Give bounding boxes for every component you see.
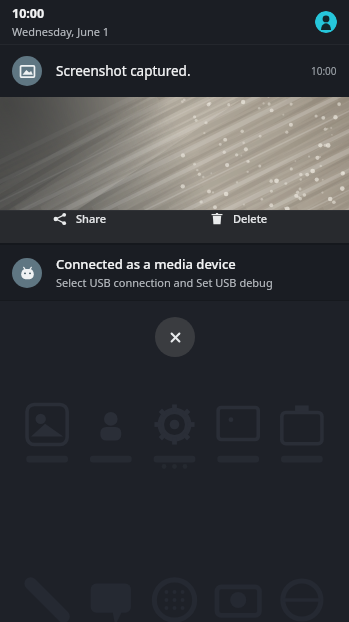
button[interactable]: Share (0, 211, 174, 226)
button[interactable]: Clear all notifications (155, 317, 195, 357)
staticText: Delete (233, 211, 268, 226)
staticText: Select USB connection and Set USB debug (56, 275, 273, 290)
button[interactable]: Screenshot captured. (0, 45, 349, 97)
button[interactable]: User profile (315, 11, 337, 33)
staticText: Share (76, 211, 106, 226)
staticText: 10:00 (12, 5, 45, 22)
staticText: 10:00 (311, 64, 337, 78)
staticText: Connected as a media device (56, 255, 236, 273)
button[interactable]: Connected as a media device (0, 245, 349, 300)
staticText: Wednesday, June 1 (12, 24, 110, 39)
button[interactable]: Delete (174, 211, 349, 226)
staticText: Screenshot captured. (56, 62, 311, 80)
